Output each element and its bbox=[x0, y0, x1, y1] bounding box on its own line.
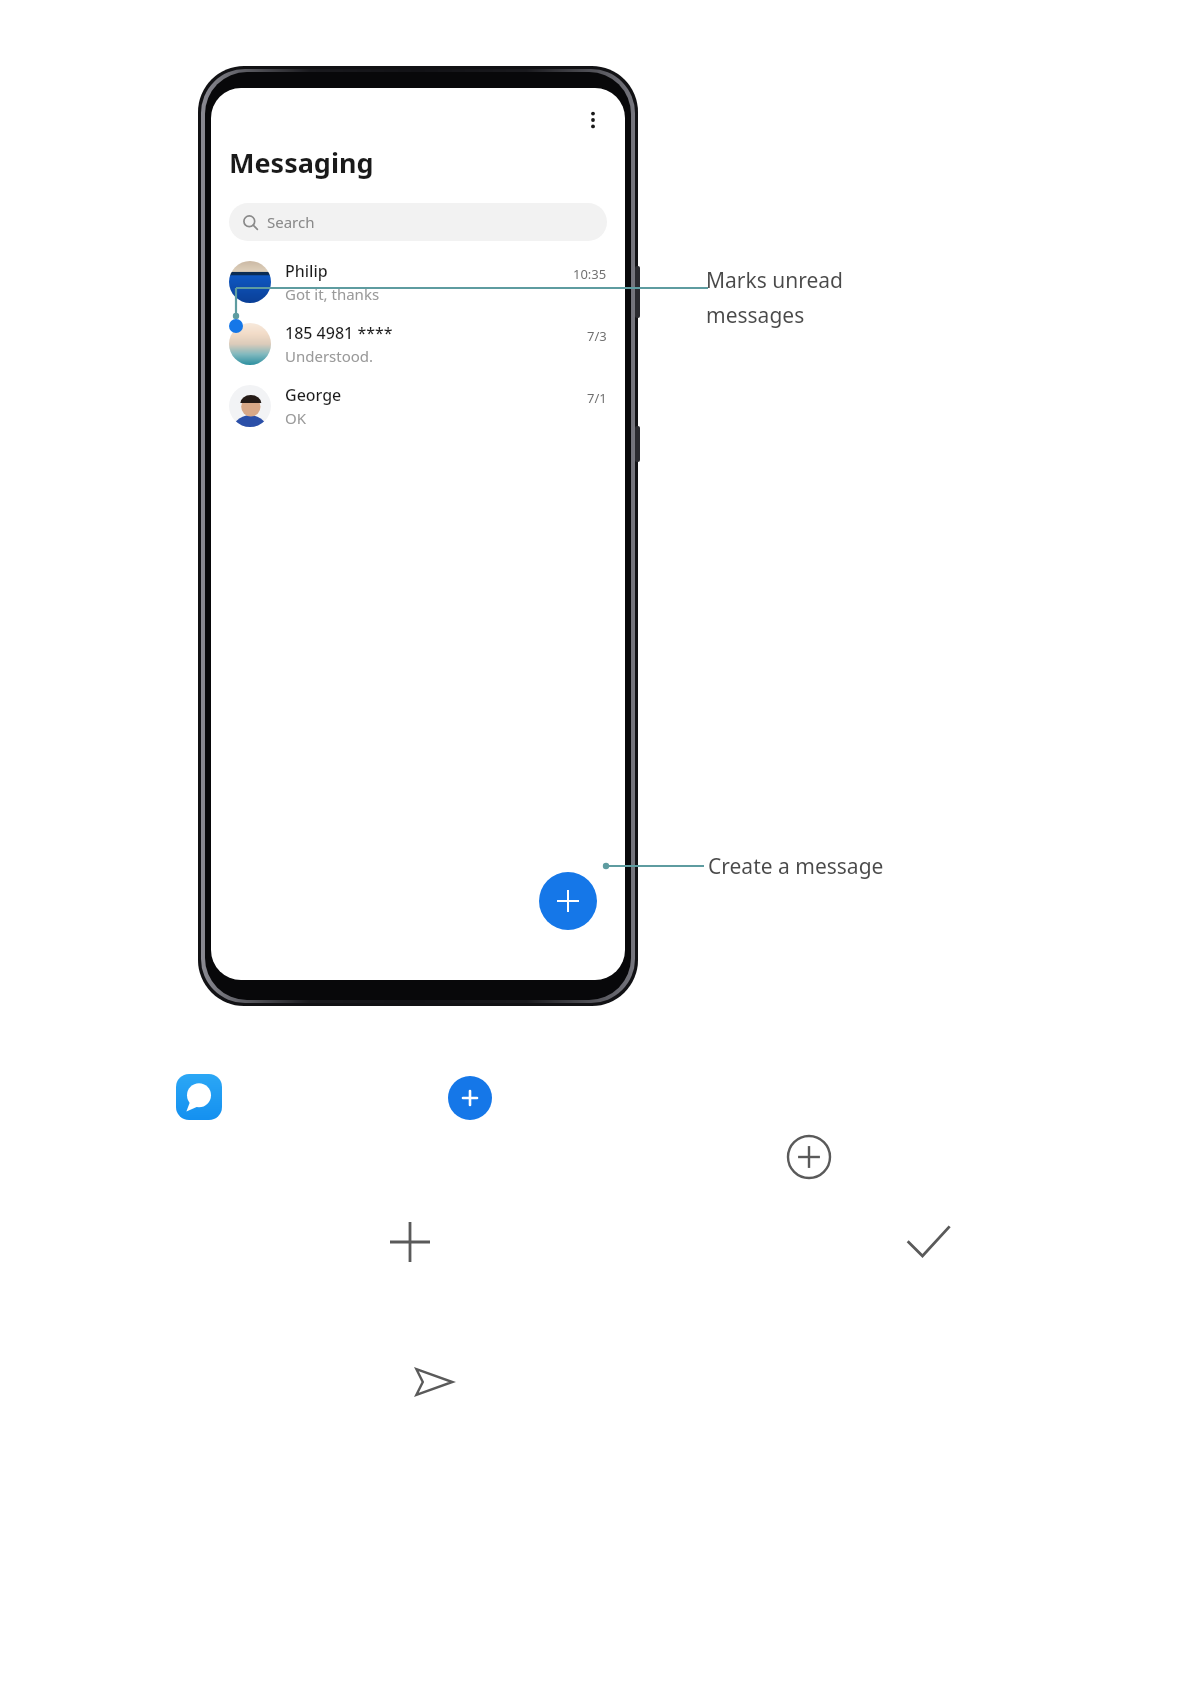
staticText: Marks unread bbox=[706, 266, 843, 295]
button[interactable]: More options bbox=[575, 102, 611, 138]
button[interactable]: Done bbox=[902, 1218, 954, 1270]
staticText: messages bbox=[706, 301, 805, 330]
button[interactable]: George bbox=[211, 375, 625, 437]
button[interactable]: Philip bbox=[211, 251, 625, 313]
staticText: Messaging bbox=[229, 144, 374, 181]
staticText: 7/3 bbox=[587, 327, 607, 345]
staticText: Search bbox=[267, 212, 315, 232]
staticText: Philip bbox=[285, 260, 328, 282]
button[interactable]: Add bbox=[448, 1076, 492, 1120]
staticText: OK bbox=[285, 408, 307, 428]
staticText: George bbox=[285, 384, 342, 406]
button[interactable]: Create a message bbox=[539, 872, 597, 930]
staticText: 185 4981 **** bbox=[285, 322, 393, 344]
staticText: Create a message bbox=[708, 852, 884, 881]
button[interactable]: Plus bbox=[386, 1218, 434, 1266]
staticText: 10:35 bbox=[573, 265, 607, 283]
staticText: Understood. bbox=[285, 346, 374, 366]
button[interactable]: Search bbox=[229, 203, 607, 241]
button[interactable]: Add outlined bbox=[786, 1134, 832, 1180]
button[interactable]: 185 4981 **** bbox=[211, 313, 625, 375]
button[interactable]: Send bbox=[410, 1358, 458, 1406]
staticText: 7/1 bbox=[587, 389, 607, 407]
button[interactable]: Messaging app icon bbox=[176, 1074, 222, 1120]
staticText: Got it, thanks bbox=[285, 284, 380, 304]
